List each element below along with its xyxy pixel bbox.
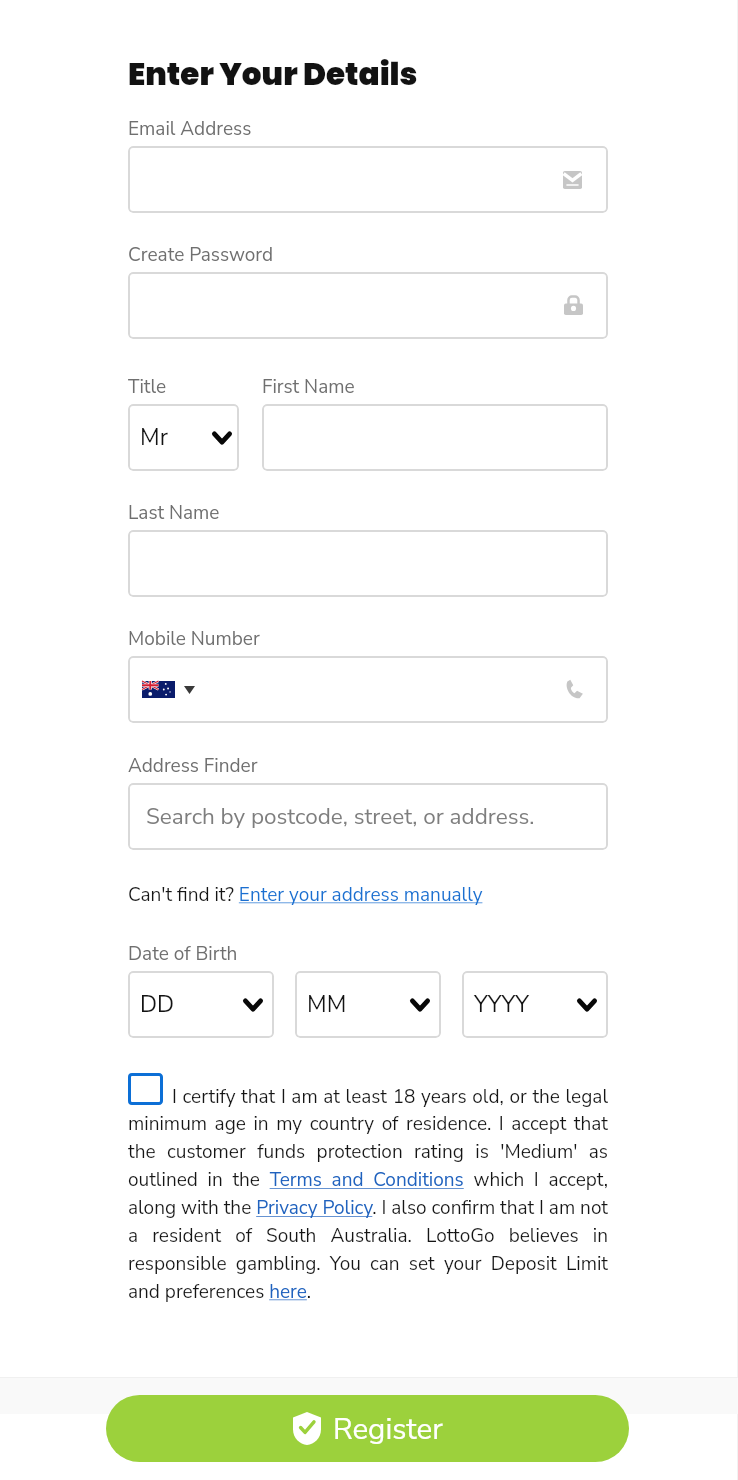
staticText: Search by postcode, street, or address. xyxy=(146,801,535,832)
staticText: First Name xyxy=(262,374,355,400)
staticText: MM xyxy=(307,989,347,1020)
other: Password xyxy=(564,296,583,315)
button[interactable]: DD xyxy=(128,971,274,1038)
staticText: Address Finder xyxy=(128,753,258,779)
staticText: Mobile Number xyxy=(128,626,260,652)
staticText: Enter Your Details xyxy=(128,52,418,95)
button[interactable]: Search by postcode, street, or address. xyxy=(128,783,608,850)
staticText: I certify that I am at least 18 years ol… xyxy=(128,1084,608,1305)
button[interactable]: I certify I am at least 18 years old xyxy=(128,1073,163,1105)
staticText: Title xyxy=(128,374,167,400)
staticText: Create Password xyxy=(128,242,274,268)
staticText: Register xyxy=(333,1409,443,1449)
button[interactable]: Email xyxy=(128,146,608,213)
button[interactable] xyxy=(262,404,608,471)
button[interactable]: MM xyxy=(295,971,441,1038)
staticText: Mr xyxy=(140,422,168,453)
button[interactable]: Can't find it? Enter your address manual… xyxy=(128,882,483,908)
button[interactable]: Verified xyxy=(106,1395,629,1462)
other: Verified xyxy=(293,1412,321,1445)
other: Phone xyxy=(564,679,585,700)
button[interactable]: YYYY xyxy=(462,971,608,1038)
staticText: Date of Birth xyxy=(128,941,238,967)
button[interactable] xyxy=(128,530,608,597)
other: Country: Australia xyxy=(142,681,175,698)
button[interactable]: Password xyxy=(128,272,608,339)
staticText: YYYY xyxy=(474,989,529,1020)
button[interactable]: Country: Australia xyxy=(128,656,608,723)
staticText: DD xyxy=(140,989,175,1020)
staticText: Last Name xyxy=(128,500,220,526)
staticText: Email Address xyxy=(128,116,252,142)
other: Email xyxy=(563,171,582,189)
button[interactable]: Mr xyxy=(128,404,239,471)
